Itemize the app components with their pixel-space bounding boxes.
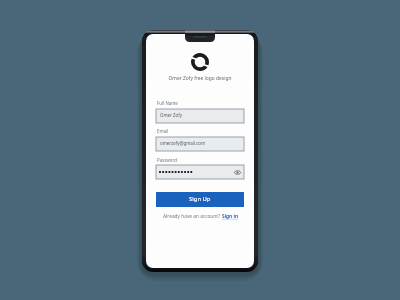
button[interactable]: Omer Zofy xyxy=(156,109,244,123)
staticText: Password xyxy=(157,157,177,163)
staticText: Sign in xyxy=(222,213,239,220)
staticText: Email xyxy=(157,128,169,134)
staticText: Already have an account? xyxy=(163,213,222,220)
button[interactable]: Sign in xyxy=(222,213,239,220)
staticText: Omer Zofy xyxy=(160,112,182,118)
button[interactable]: Sign Up xyxy=(156,192,244,207)
button[interactable]: Show password xyxy=(156,165,244,179)
button[interactable]: Show password xyxy=(230,165,244,179)
staticText: Full Name xyxy=(157,100,178,106)
button[interactable]: omerzofy@gmail.com xyxy=(156,137,244,151)
staticText: Sign Up xyxy=(189,195,211,203)
staticText: omerzofy@gmail.com xyxy=(160,140,206,146)
staticText: Omer Zofy free logo design xyxy=(146,75,254,82)
